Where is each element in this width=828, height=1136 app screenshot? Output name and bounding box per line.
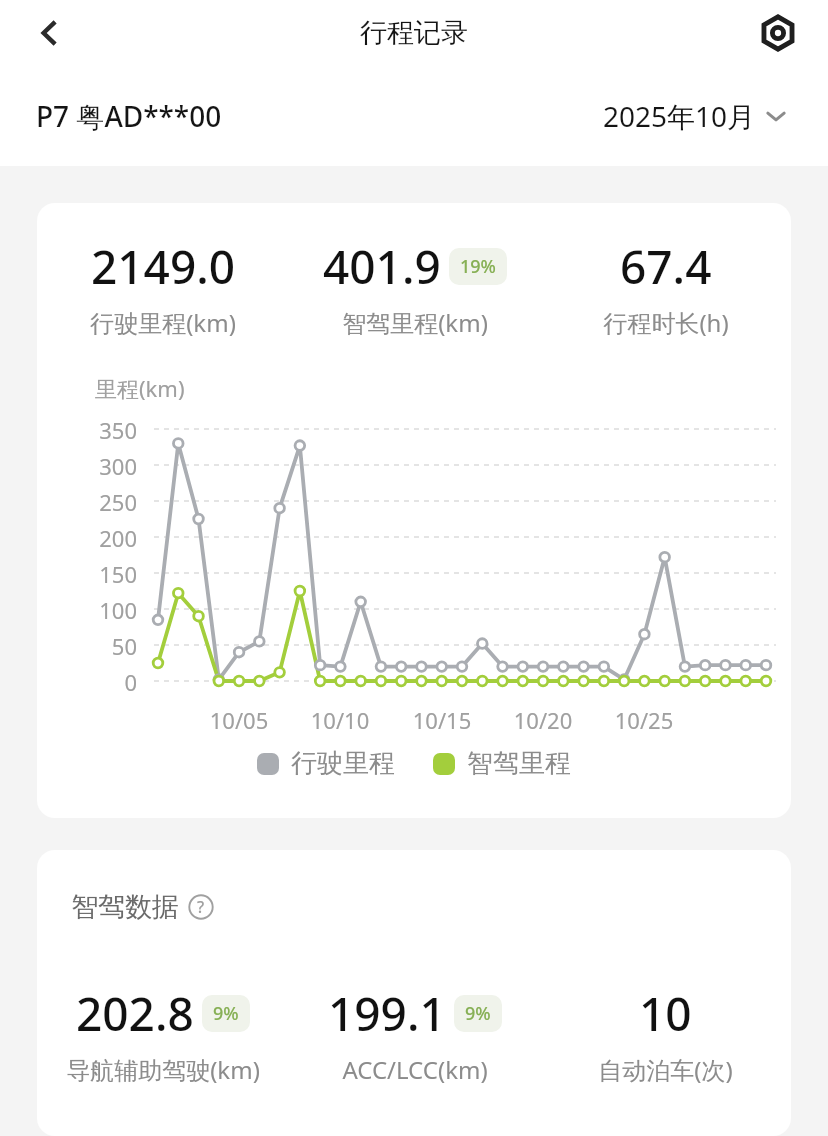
staticText: 2149.0 (91, 235, 236, 298)
staticText: 100 (37, 595, 137, 625)
staticText: 行程记录 (360, 16, 468, 50)
staticText: 150 (37, 559, 137, 589)
staticText: 10 (639, 982, 692, 1045)
staticText: 行程时长(h) (603, 306, 729, 339)
button[interactable]: 2025年10月 (599, 91, 792, 141)
button[interactable]: Back (20, 3, 80, 63)
staticText: 199.1 (328, 982, 446, 1045)
staticText: 10/10 (295, 705, 385, 735)
staticText: 10/05 (194, 705, 284, 735)
staticText: 智驾里程 (467, 747, 571, 780)
staticText: 19% (460, 254, 496, 279)
staticText: 智驾里程(km) (342, 306, 488, 339)
staticText: 导航辅助驾驶(km) (66, 1053, 260, 1086)
staticText: 10/20 (498, 705, 588, 735)
button[interactable]: 智驾里程 (429, 743, 575, 784)
staticText: 300 (37, 451, 137, 481)
staticText: 自动泊车(次) (598, 1053, 733, 1086)
staticText: P7 粤AD***00 (36, 97, 222, 135)
button[interactable]: Help (185, 891, 217, 923)
button[interactable]: 2149.0 (37, 235, 289, 339)
staticText: 0 (37, 667, 137, 697)
staticText: 200 (37, 523, 137, 553)
staticText: 10/15 (397, 705, 487, 735)
staticText: 250 (37, 487, 137, 517)
staticText: 202.8 (76, 982, 194, 1045)
button[interactable]: 401.9 (289, 235, 540, 339)
button[interactable]: 199.1 (289, 982, 540, 1086)
staticText: 行驶里程(km) (90, 306, 236, 339)
button[interactable]: 67.4 (540, 235, 791, 339)
button[interactable]: 行驶里程 (253, 743, 399, 784)
staticText: 67.4 (620, 235, 712, 298)
button[interactable]: 10 (540, 982, 791, 1086)
staticText: 行驶里程 (291, 747, 395, 780)
staticText: 50 (37, 631, 137, 661)
staticText: 2025年10月 (603, 97, 756, 135)
button[interactable]: Settings (748, 3, 808, 63)
staticText: 里程(km) (95, 373, 185, 403)
staticText: 9% (465, 1001, 491, 1026)
staticText: 9% (213, 1001, 239, 1026)
button[interactable]: 202.8 (37, 982, 289, 1086)
staticText: 10/25 (599, 705, 689, 735)
staticText: 350 (37, 415, 137, 445)
staticText: ? (197, 896, 205, 918)
staticText: 智驾数据 (71, 890, 179, 924)
staticText: 401.9 (323, 235, 441, 298)
staticText: ACC/LCC(km) (342, 1053, 488, 1086)
